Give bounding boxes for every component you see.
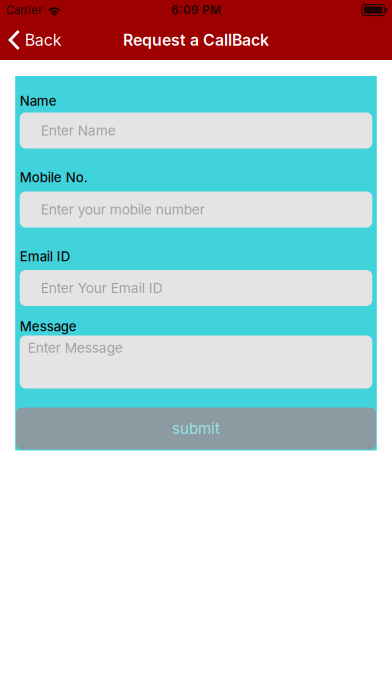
button[interactable]: submit (16, 407, 376, 449)
staticText: Carrier (6, 3, 42, 17)
staticText: Message (20, 318, 77, 334)
staticText: Enter Message (28, 339, 123, 356)
staticText: Enter Your Email ID (41, 280, 163, 296)
staticText: Enter your mobile number (41, 201, 205, 218)
staticText: Mobile No. (20, 169, 88, 185)
staticText: Back (25, 30, 62, 50)
button[interactable]: Back (0, 24, 72, 55)
staticText: Request a CallBack (123, 30, 269, 50)
staticText: submit (172, 419, 220, 438)
staticText: Enter Name (41, 122, 116, 139)
staticText: Email ID (20, 248, 71, 264)
staticText: 6:09 PM (171, 3, 221, 17)
staticText: Name (20, 93, 57, 109)
